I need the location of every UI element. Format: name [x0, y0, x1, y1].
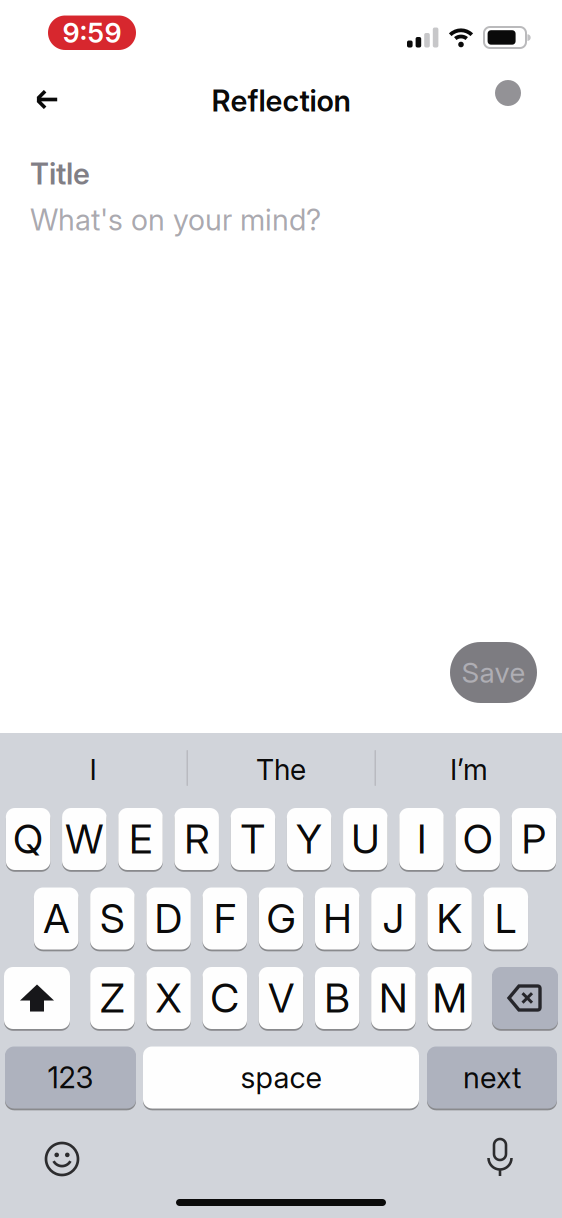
- staticText: O: [463, 815, 493, 863]
- button[interactable]: B: [315, 966, 359, 1030]
- button[interactable]: G: [259, 886, 303, 950]
- staticText: W: [65, 815, 103, 863]
- button[interactable]: Recording 9:59: [48, 15, 136, 50]
- staticText: D: [155, 894, 183, 943]
- staticText: Save: [461, 656, 525, 689]
- staticText: H: [323, 894, 351, 943]
- staticText: Title: [30, 156, 90, 191]
- button[interactable]: I: [399, 807, 444, 871]
- staticText: L: [495, 894, 517, 943]
- button[interactable]: V: [259, 966, 303, 1030]
- button[interactable]: Save: [450, 642, 537, 703]
- button[interactable]: W: [62, 807, 107, 871]
- staticText: space: [240, 1060, 321, 1095]
- staticText: K: [437, 894, 463, 943]
- button[interactable]: D: [146, 886, 191, 950]
- staticText: A: [43, 894, 69, 943]
- button[interactable]: S: [90, 886, 135, 950]
- button[interactable]: Q: [6, 807, 50, 871]
- staticText: 123: [47, 1060, 93, 1095]
- button[interactable]: H: [315, 886, 359, 950]
- staticText: Q: [13, 815, 43, 863]
- button[interactable]: E: [118, 807, 163, 871]
- button[interactable]: O: [455, 807, 500, 871]
- staticText: Reflection: [211, 83, 350, 118]
- button[interactable]: L: [483, 886, 528, 950]
- staticText: F: [214, 894, 236, 943]
- button[interactable]: next: [427, 1045, 557, 1109]
- staticText: E: [129, 815, 152, 863]
- button[interactable]: X: [146, 966, 191, 1030]
- staticText: C: [210, 974, 239, 1022]
- staticText: The: [256, 752, 306, 787]
- button[interactable]: R: [174, 807, 219, 871]
- button[interactable]: space: [143, 1045, 419, 1109]
- button[interactable]: Z: [90, 966, 135, 1030]
- staticText: J: [382, 894, 404, 943]
- button[interactable]: P: [512, 807, 556, 871]
- staticText: P: [521, 815, 546, 863]
- staticText: Z: [100, 974, 125, 1022]
- button[interactable]: J: [371, 886, 416, 950]
- button[interactable]: K: [427, 886, 472, 950]
- staticText: I: [417, 815, 426, 863]
- button[interactable]: A: [34, 886, 78, 950]
- button[interactable]: Profile: [495, 80, 521, 106]
- staticText: What's on your mind?: [30, 202, 321, 237]
- button[interactable]: Back: [28, 82, 66, 117]
- button[interactable]: U: [343, 807, 388, 871]
- button[interactable]: Delete: [492, 966, 558, 1030]
- staticText: X: [156, 974, 182, 1022]
- button[interactable]: N: [371, 966, 416, 1030]
- staticText: N: [379, 974, 408, 1022]
- staticText: I’m: [450, 752, 488, 787]
- staticText: B: [324, 974, 350, 1022]
- staticText: next: [463, 1060, 521, 1095]
- staticText: I: [89, 752, 96, 787]
- button[interactable]: M: [427, 966, 472, 1030]
- staticText: V: [268, 974, 294, 1022]
- button[interactable]: Emoji: [45, 1142, 79, 1176]
- button[interactable]: T: [231, 807, 275, 871]
- button[interactable]: Y: [287, 807, 331, 871]
- button[interactable]: Suggestion I: [0, 737, 186, 801]
- button[interactable]: 123: [5, 1045, 136, 1109]
- button[interactable]: C: [203, 966, 247, 1030]
- staticText: S: [100, 894, 125, 943]
- staticText: R: [184, 815, 209, 863]
- button[interactable]: F: [203, 886, 247, 950]
- staticText: M: [433, 974, 467, 1022]
- staticText: U: [351, 815, 379, 863]
- staticText: T: [240, 815, 265, 863]
- button[interactable]: Suggestion The: [188, 737, 374, 801]
- staticText: Y: [296, 815, 322, 863]
- staticText: G: [266, 894, 295, 943]
- button[interactable]: Shift: [4, 966, 70, 1030]
- button[interactable]: Suggestion I'm: [376, 737, 562, 801]
- button[interactable]: Dictation: [486, 1139, 514, 1177]
- staticText: 9:59: [62, 16, 121, 49]
